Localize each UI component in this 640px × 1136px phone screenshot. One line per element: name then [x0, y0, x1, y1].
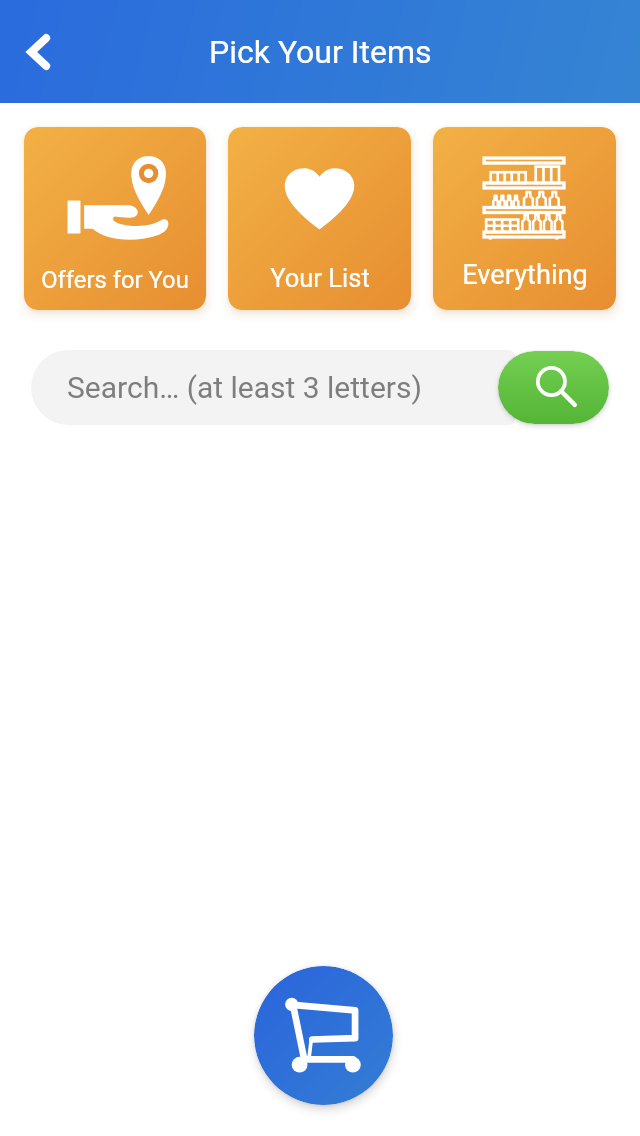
button[interactable]: Back [0, 14, 76, 90]
staticText: Your List [270, 263, 370, 293]
button[interactable]: Everything [433, 127, 616, 310]
button[interactable]: Search [498, 351, 609, 424]
staticText: Pick Your Items [209, 33, 432, 71]
staticText: Offers for You [41, 266, 189, 294]
button[interactable]: Search… (at least 3 letters) [31, 350, 515, 425]
button[interactable]: Offers for You [24, 127, 206, 310]
staticText: Everything [462, 259, 588, 291]
staticText: Search… (at least 3 letters) [67, 370, 422, 405]
button[interactable]: Your List [228, 127, 411, 310]
button[interactable]: Cart [254, 966, 393, 1105]
